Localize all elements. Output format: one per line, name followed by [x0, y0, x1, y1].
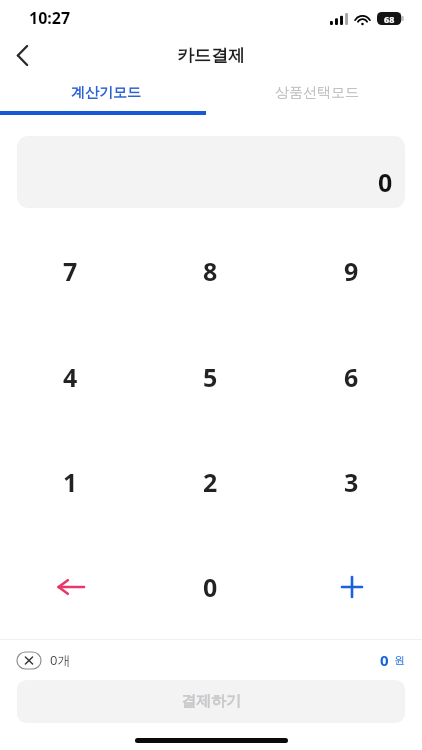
button[interactable]: Back	[0, 36, 44, 74]
staticText: 카드결제	[177, 45, 245, 66]
button[interactable]: 6	[281, 324, 422, 429]
button[interactable]: 2	[140, 429, 281, 534]
staticText: 0	[380, 650, 389, 670]
staticText: 3	[344, 465, 359, 499]
button[interactable]: 4	[0, 324, 140, 429]
staticText: 2	[203, 465, 218, 499]
staticText: 0	[378, 165, 393, 199]
staticText: 5	[203, 360, 218, 394]
button[interactable]: Backspace	[0, 534, 140, 639]
staticText: 원	[394, 653, 405, 667]
staticText: 7	[63, 254, 78, 288]
staticText: 계산기모드	[71, 84, 141, 102]
button[interactable]: 7	[0, 218, 140, 324]
staticText: 4	[63, 360, 78, 394]
staticText: 68	[384, 13, 395, 25]
button[interactable]: 상품선택모드	[211, 74, 422, 111]
button[interactable]: Add	[281, 534, 422, 639]
staticText: 상품선택모드	[275, 84, 359, 102]
staticText: 0	[203, 570, 218, 604]
button[interactable]: 1	[0, 429, 140, 534]
button[interactable]: 5	[140, 324, 281, 429]
staticText: 6	[344, 360, 359, 394]
staticText: 0개	[50, 651, 71, 669]
staticText: 9	[344, 254, 359, 288]
staticText: 10:27	[29, 7, 71, 29]
button[interactable]: 3	[281, 429, 422, 534]
staticText: 1	[63, 465, 78, 499]
button[interactable]: 9	[281, 218, 422, 324]
button[interactable]: 계산기모드	[0, 74, 211, 111]
staticText: 결제하기	[181, 692, 241, 711]
button[interactable]: 결제하기	[17, 680, 405, 723]
staticText: 8	[203, 254, 218, 288]
button[interactable]: 0	[17, 136, 405, 208]
button[interactable]: Clear	[17, 652, 41, 669]
button[interactable]: 0	[140, 534, 281, 639]
button[interactable]: 8	[140, 218, 281, 324]
